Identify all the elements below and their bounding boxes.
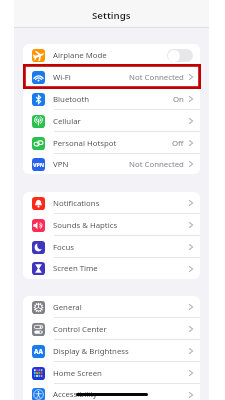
button[interactable]: Home Screen bbox=[23, 362, 200, 384]
button[interactable]: Wi-Fi bbox=[23, 66, 200, 88]
staticText: Focus bbox=[53, 242, 75, 253]
button[interactable]: Focus bbox=[23, 236, 200, 258]
button[interactable]: Control Center bbox=[23, 318, 200, 340]
staticText: On bbox=[173, 94, 184, 105]
staticText: Accessibility bbox=[53, 389, 97, 400]
button[interactable]: Cellular bbox=[23, 110, 200, 132]
staticText: Airplane Mode bbox=[53, 50, 107, 61]
button[interactable]: Airplane Mode bbox=[23, 44, 200, 66]
button[interactable]: Screen Time bbox=[23, 258, 200, 279]
staticText: Personal Hotspot bbox=[53, 138, 117, 149]
staticText: Control Center bbox=[53, 324, 107, 335]
button[interactable]: Personal Hotspot bbox=[23, 132, 200, 154]
staticText: Sounds & Haptics bbox=[53, 220, 118, 231]
button[interactable]: Bluetooth bbox=[23, 88, 200, 110]
button[interactable]: Airplane Mode toggle bbox=[167, 49, 193, 62]
staticText: VPN bbox=[33, 161, 45, 168]
staticText: VPN bbox=[53, 159, 69, 170]
staticText: Wi-Fi bbox=[53, 72, 71, 83]
staticText: Notifications bbox=[53, 198, 100, 209]
button[interactable]: AA bbox=[23, 340, 200, 362]
button[interactable]: Notifications bbox=[23, 192, 200, 214]
staticText: Not Connected bbox=[129, 72, 184, 83]
button[interactable]: Sounds & Haptics bbox=[23, 214, 200, 236]
button[interactable]: VPN bbox=[23, 154, 200, 174]
staticText: Display & Brightness bbox=[53, 346, 129, 357]
staticText: Home Screen bbox=[53, 368, 102, 379]
staticText: AA bbox=[34, 347, 43, 356]
staticText: Bluetooth bbox=[53, 94, 90, 105]
staticText: Screen Time bbox=[53, 263, 98, 274]
staticText: Off bbox=[172, 138, 184, 149]
button[interactable]: General bbox=[23, 296, 200, 318]
staticText: Settings bbox=[92, 9, 131, 22]
staticText: General bbox=[53, 302, 82, 313]
staticText: Not Connected bbox=[129, 159, 184, 170]
staticText: Cellular bbox=[53, 116, 81, 127]
button[interactable]: Accessibility bbox=[23, 384, 200, 400]
